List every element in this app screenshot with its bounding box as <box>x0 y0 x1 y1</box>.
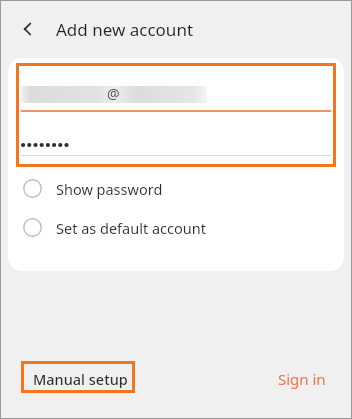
staticText: Set as default account <box>56 218 206 238</box>
button[interactable] <box>8 114 344 159</box>
button[interactable]: Manual setup <box>21 362 140 396</box>
staticText: Manual setup <box>33 369 128 389</box>
button[interactable]: Sign in <box>270 362 334 396</box>
staticText: Show password <box>56 179 163 199</box>
button[interactable]: Set as default account <box>8 208 344 247</box>
staticText: Sign in <box>278 369 326 389</box>
button[interactable]: Back <box>12 13 44 45</box>
staticText: @ <box>107 84 120 103</box>
button[interactable]: Show password <box>8 169 344 208</box>
staticText: Add new account <box>56 18 194 41</box>
button[interactable]: @ <box>8 58 344 114</box>
